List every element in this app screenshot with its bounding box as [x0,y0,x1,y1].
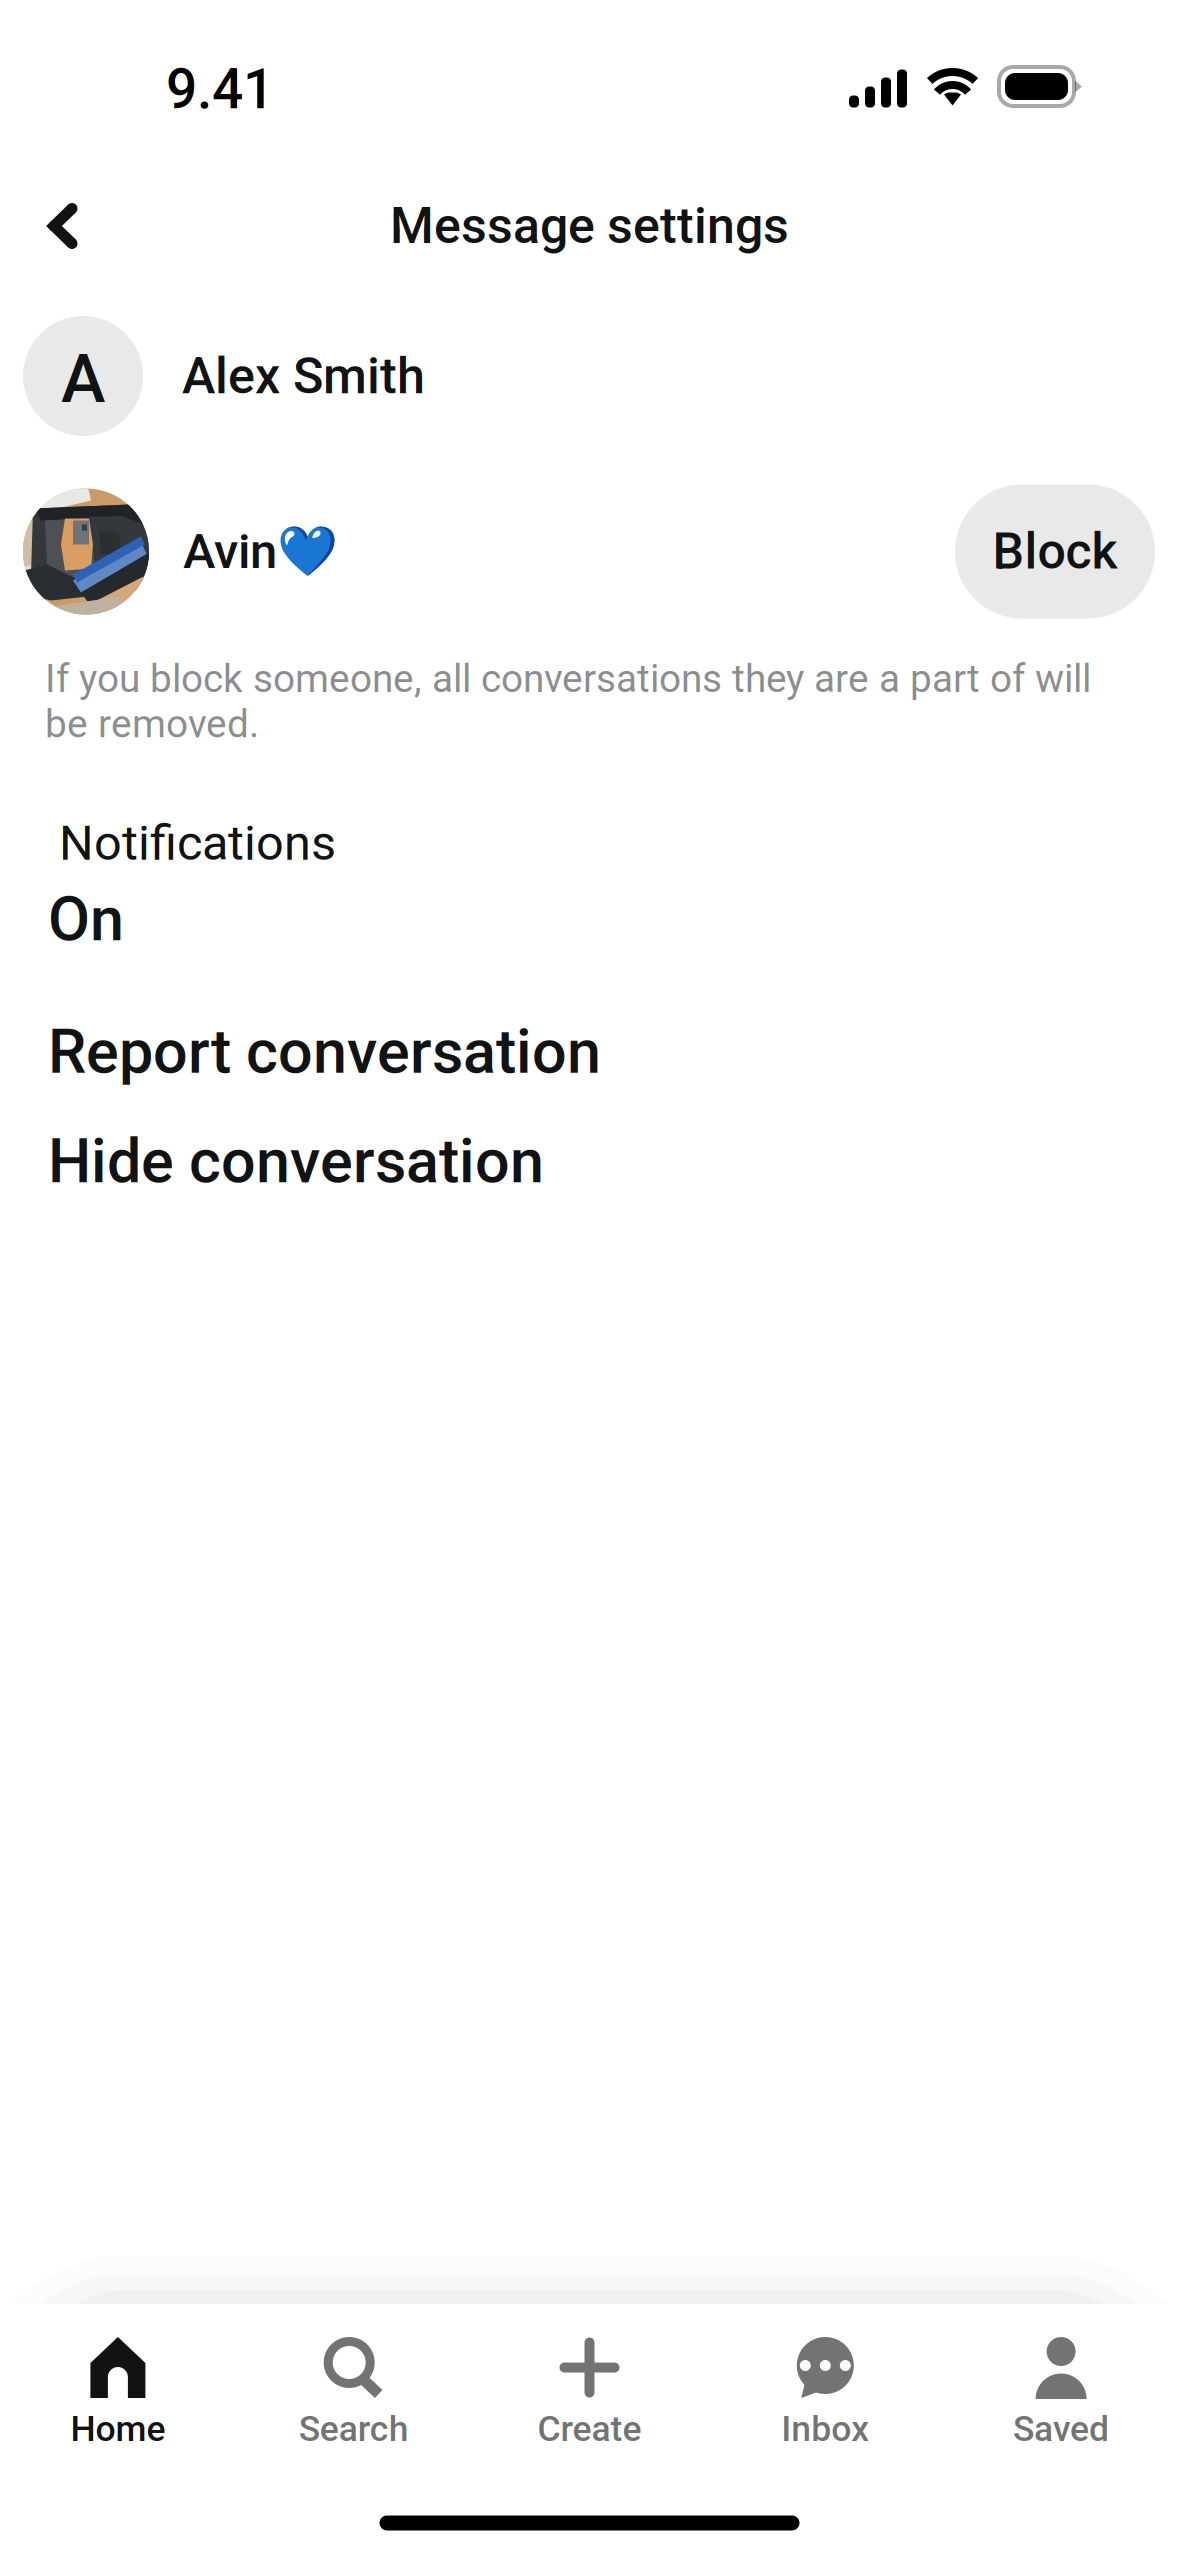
button[interactable]: Back [16,179,110,273]
staticText: Home [70,2408,165,2450]
staticText: On [48,884,124,955]
button[interactable]: Home [0,2304,236,2493]
staticText: Alex Smith [182,346,425,405]
staticText: Create [537,2408,641,2450]
staticText: Inbox [781,2408,869,2450]
button[interactable]: Notifications [0,815,1179,955]
staticText: If you block someone, all conversations … [45,656,1091,747]
button[interactable]: Create [472,2304,707,2493]
button[interactable]: Report conversation [0,1016,1179,1088]
button[interactable]: Hide conversation [0,1126,1179,1197]
button[interactable]: A [0,273,1179,479]
staticText: Hide conversation [48,1126,544,1197]
button[interactable]: Saved [943,2304,1179,2493]
staticText: Saved [1013,2408,1109,2450]
staticText: Block [992,522,1117,581]
staticText: Report conversation [48,1016,601,1088]
button[interactable]: Inbox [707,2304,943,2493]
staticText: A [61,340,105,418]
staticText: 9.41 [166,57,274,122]
button[interactable]: Block [955,484,1155,618]
staticText: Avin💙 [183,523,338,580]
staticText: Search [299,2408,409,2450]
staticText: Message settings [390,197,789,255]
button[interactable]: Search [236,2304,472,2493]
staticText: Notifications [59,815,336,872]
